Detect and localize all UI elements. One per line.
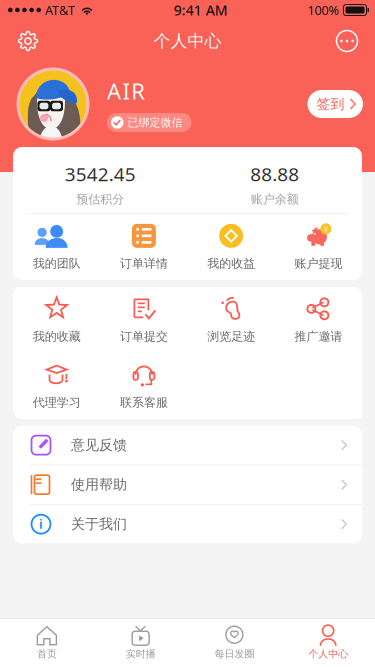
staticText: 3542.45 bbox=[65, 161, 136, 187]
staticText: 使用帮助 bbox=[71, 476, 127, 493]
staticText: 每日发圈 bbox=[214, 648, 254, 660]
staticText: 个人中心 bbox=[308, 648, 348, 660]
button[interactable]: Messages bbox=[327, 21, 367, 61]
staticText: 我的收藏 bbox=[33, 329, 81, 344]
button[interactable]: 订单提交 bbox=[100, 287, 187, 353]
button[interactable]: 我的收藏 bbox=[13, 287, 100, 353]
button[interactable]: ¥ bbox=[275, 214, 362, 280]
button[interactable]: 代理学习 bbox=[13, 353, 100, 419]
button[interactable]: 我的团队 bbox=[13, 214, 100, 280]
staticText: 实时播 bbox=[126, 648, 156, 660]
button[interactable]: 联系客服 bbox=[100, 353, 187, 419]
staticText: 我的团队 bbox=[33, 256, 81, 271]
staticText: 关于我们 bbox=[71, 515, 127, 533]
button[interactable]: 签到 bbox=[307, 90, 363, 118]
button[interactable]: 每日发圈 bbox=[187, 619, 281, 667]
staticText: 订单详情 bbox=[120, 256, 168, 271]
button[interactable]: 个人中心 bbox=[281, 619, 375, 667]
staticText: 意见反馈 bbox=[71, 436, 127, 454]
staticText: 浏览足迹 bbox=[207, 329, 255, 344]
staticText: 我的收益 bbox=[207, 256, 255, 271]
staticText: 个人中心 bbox=[153, 30, 221, 52]
staticText: 代理学习 bbox=[33, 395, 81, 410]
staticText: 签到 bbox=[316, 95, 344, 113]
button[interactable]: 订单详情 bbox=[100, 214, 187, 280]
staticText: AIR bbox=[107, 76, 145, 106]
button[interactable]: 实时播 bbox=[94, 619, 188, 667]
staticText: 推广邀请 bbox=[294, 329, 342, 344]
staticText: 已绑定微信 bbox=[127, 116, 182, 129]
button[interactable]: 我的收益 bbox=[187, 214, 275, 280]
button[interactable]: 推广邀请 bbox=[275, 287, 362, 353]
staticText: 100% bbox=[307, 1, 339, 19]
staticText: ¥ bbox=[324, 224, 328, 234]
staticText: 账户余额 bbox=[251, 192, 299, 207]
staticText: AT&T bbox=[45, 1, 75, 19]
staticText: 首页 bbox=[37, 648, 57, 660]
button[interactable]: 浏览足迹 bbox=[187, 287, 275, 353]
button[interactable]: 首页 bbox=[0, 619, 94, 667]
staticText: 预估积分 bbox=[76, 192, 124, 207]
staticText: 订单提交 bbox=[120, 329, 168, 344]
staticText: 9:41 AM bbox=[174, 0, 228, 20]
staticText: 联系客服 bbox=[120, 395, 168, 410]
button[interactable]: 意见反馈 bbox=[13, 426, 362, 465]
staticText: 账户提现 bbox=[294, 256, 342, 271]
button[interactable]: 使用帮助 bbox=[13, 465, 362, 505]
staticText: 88.88 bbox=[250, 161, 299, 187]
button[interactable]: Settings bbox=[8, 21, 48, 61]
button[interactable]: i bbox=[13, 505, 362, 543]
staticText: i bbox=[39, 516, 43, 532]
